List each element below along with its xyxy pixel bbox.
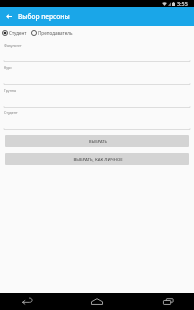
staticText: 3:55 — [177, 0, 188, 7]
button[interactable]: Преподаватель — [31, 30, 74, 36]
staticText: Преподаватель — [38, 30, 73, 36]
button[interactable]: Обзор — [147, 293, 189, 310]
button[interactable]: Назад — [0, 8, 17, 25]
button[interactable]: ВЫБРАТЬ — [5, 135, 189, 147]
staticText: Факультет — [4, 43, 22, 48]
button[interactable]: Домой — [76, 293, 118, 310]
staticText: ВЫБРАТЬ — [89, 139, 107, 144]
staticText: Студент — [4, 110, 18, 115]
staticText: Группа — [4, 88, 16, 93]
staticText: Курс — [4, 65, 12, 70]
button[interactable]: ВЫБРАТЬ, КАК ЛИЧНОЕ — [5, 153, 189, 165]
staticText: Выбор персоны — [18, 12, 70, 21]
staticText: Студент — [9, 30, 27, 36]
staticText: ВЫБРАТЬ, КАК ЛИЧНОЕ — [73, 156, 123, 162]
button[interactable]: Назад — [6, 293, 48, 310]
button[interactable]: Студент — [0, 30, 28, 36]
